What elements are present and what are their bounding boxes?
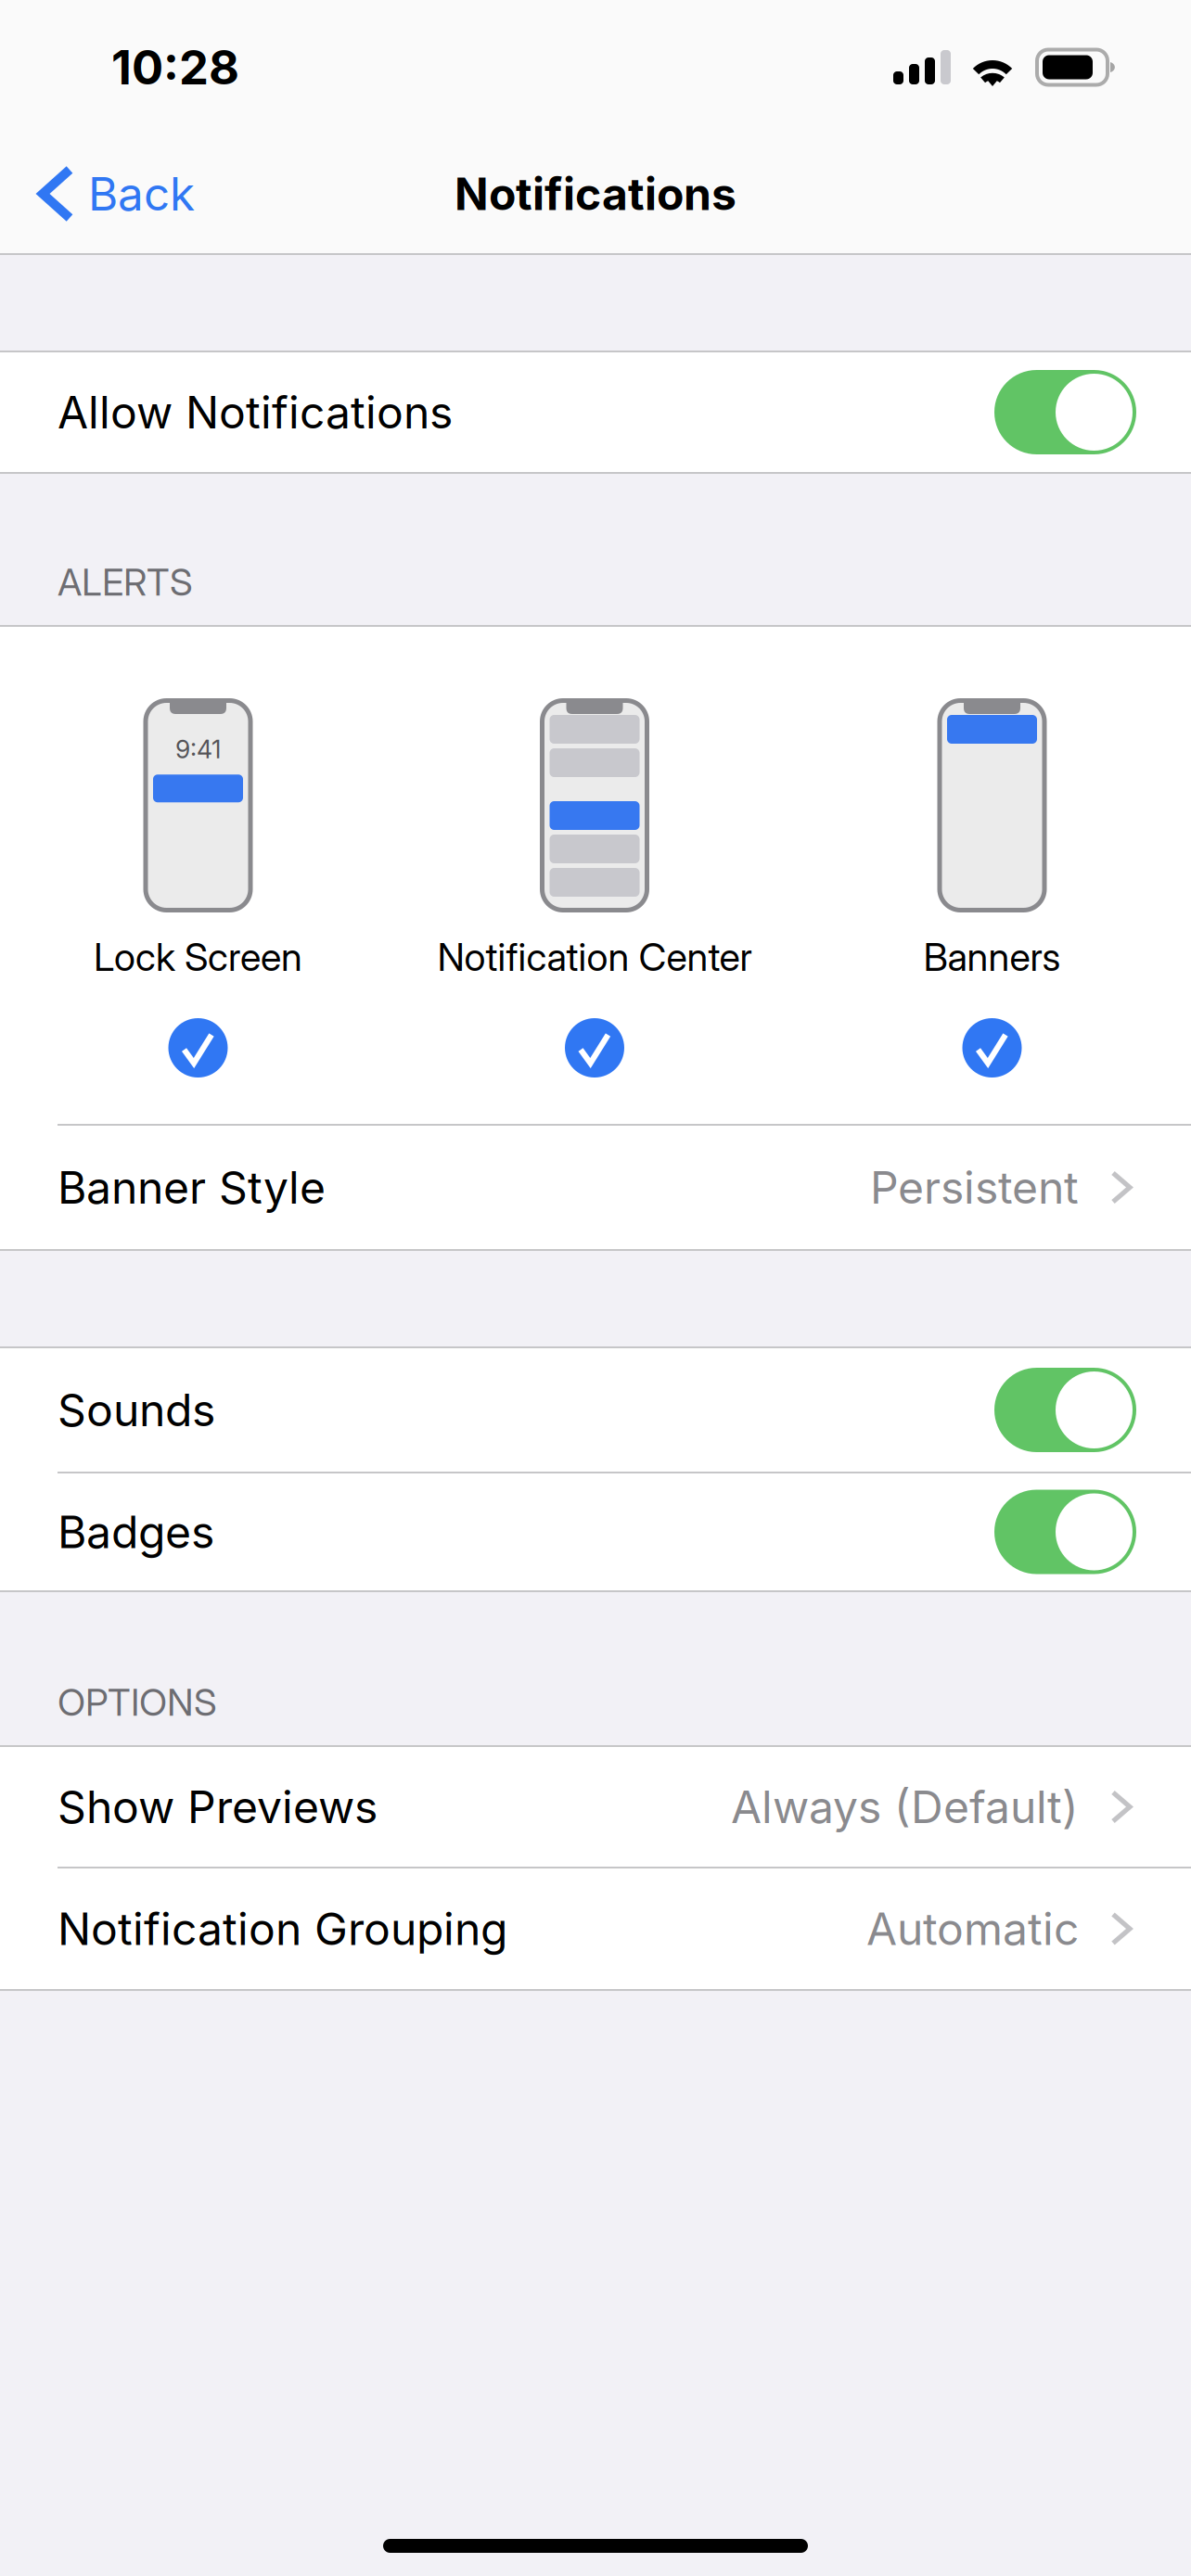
staticText: OPTIONS	[58, 1680, 217, 1725]
staticText: Banner Style	[58, 1160, 326, 1214]
button[interactable]: Banner Style	[0, 1126, 1191, 1249]
staticText: Notification Grouping	[58, 1902, 507, 1956]
staticText: Automatic	[866, 1902, 1079, 1956]
button[interactable]: Allow Notifications	[0, 352, 1191, 472]
button[interactable]: Notification Grouping	[0, 1868, 1191, 1989]
staticText: 9:41	[175, 734, 221, 764]
button[interactable]: Back	[0, 134, 217, 253]
button[interactable]: 9:41	[0, 698, 396, 1078]
staticText: Banners	[923, 934, 1061, 980]
staticText: Back	[88, 166, 195, 222]
staticText: Lock Screen	[94, 934, 302, 980]
staticText: Allow Notifications	[58, 385, 453, 439]
staticText: Notifications	[455, 167, 736, 221]
button[interactable]: Badges	[0, 1473, 1191, 1590]
staticText: Badges	[58, 1505, 214, 1559]
staticText: Always (Default)	[731, 1780, 1079, 1834]
staticText: Notification Center	[437, 934, 752, 980]
button[interactable]: Show Previews	[0, 1747, 1191, 1867]
button[interactable]: Notification Center	[396, 698, 793, 1078]
staticText: Show Previews	[58, 1780, 378, 1834]
button[interactable]: Sounds	[0, 1348, 1191, 1472]
staticText: Persistent	[870, 1160, 1079, 1214]
staticText: ALERTS	[58, 560, 193, 605]
staticText: 10:28	[111, 39, 239, 96]
staticText: Sounds	[58, 1383, 215, 1437]
button[interactable]: Banners	[793, 698, 1191, 1078]
